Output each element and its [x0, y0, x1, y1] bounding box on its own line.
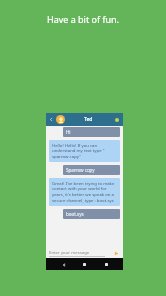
- staticText: Ted: [84, 116, 93, 123]
- button[interactable]: Back: [48, 116, 55, 123]
- button[interactable]: Great! I've been trying to make contact …: [49, 178, 120, 206]
- button[interactable]: Hi: [63, 127, 120, 137]
- button[interactable]: Contact avatar: [56, 115, 65, 124]
- button[interactable]: Status: [113, 116, 121, 124]
- staticText: Great! I've been trying to make contact …: [52, 180, 117, 204]
- button[interactable]: Back: [59, 260, 68, 269]
- button[interactable]: Enter your message: [49, 249, 110, 257]
- staticText: Enter your message: [49, 249, 90, 255]
- staticText: Hi: [66, 129, 71, 135]
- button[interactable]: Send: [112, 249, 120, 257]
- button[interactable]: Hello! Hello! If you can understand my t…: [49, 140, 120, 162]
- button[interactable]: Home: [80, 260, 89, 269]
- staticText: Sparrow copy: [66, 167, 95, 173]
- staticText: Hello! Hello! If you can understand my t…: [52, 142, 117, 160]
- button[interactable]: Sparrow copy: [63, 165, 120, 175]
- button[interactable]: Recent apps: [102, 260, 111, 269]
- staticText: Have a bit of fun.: [0, 13, 166, 25]
- staticText: boot.sys: [66, 211, 84, 217]
- button[interactable]: boot.sys: [63, 209, 120, 219]
